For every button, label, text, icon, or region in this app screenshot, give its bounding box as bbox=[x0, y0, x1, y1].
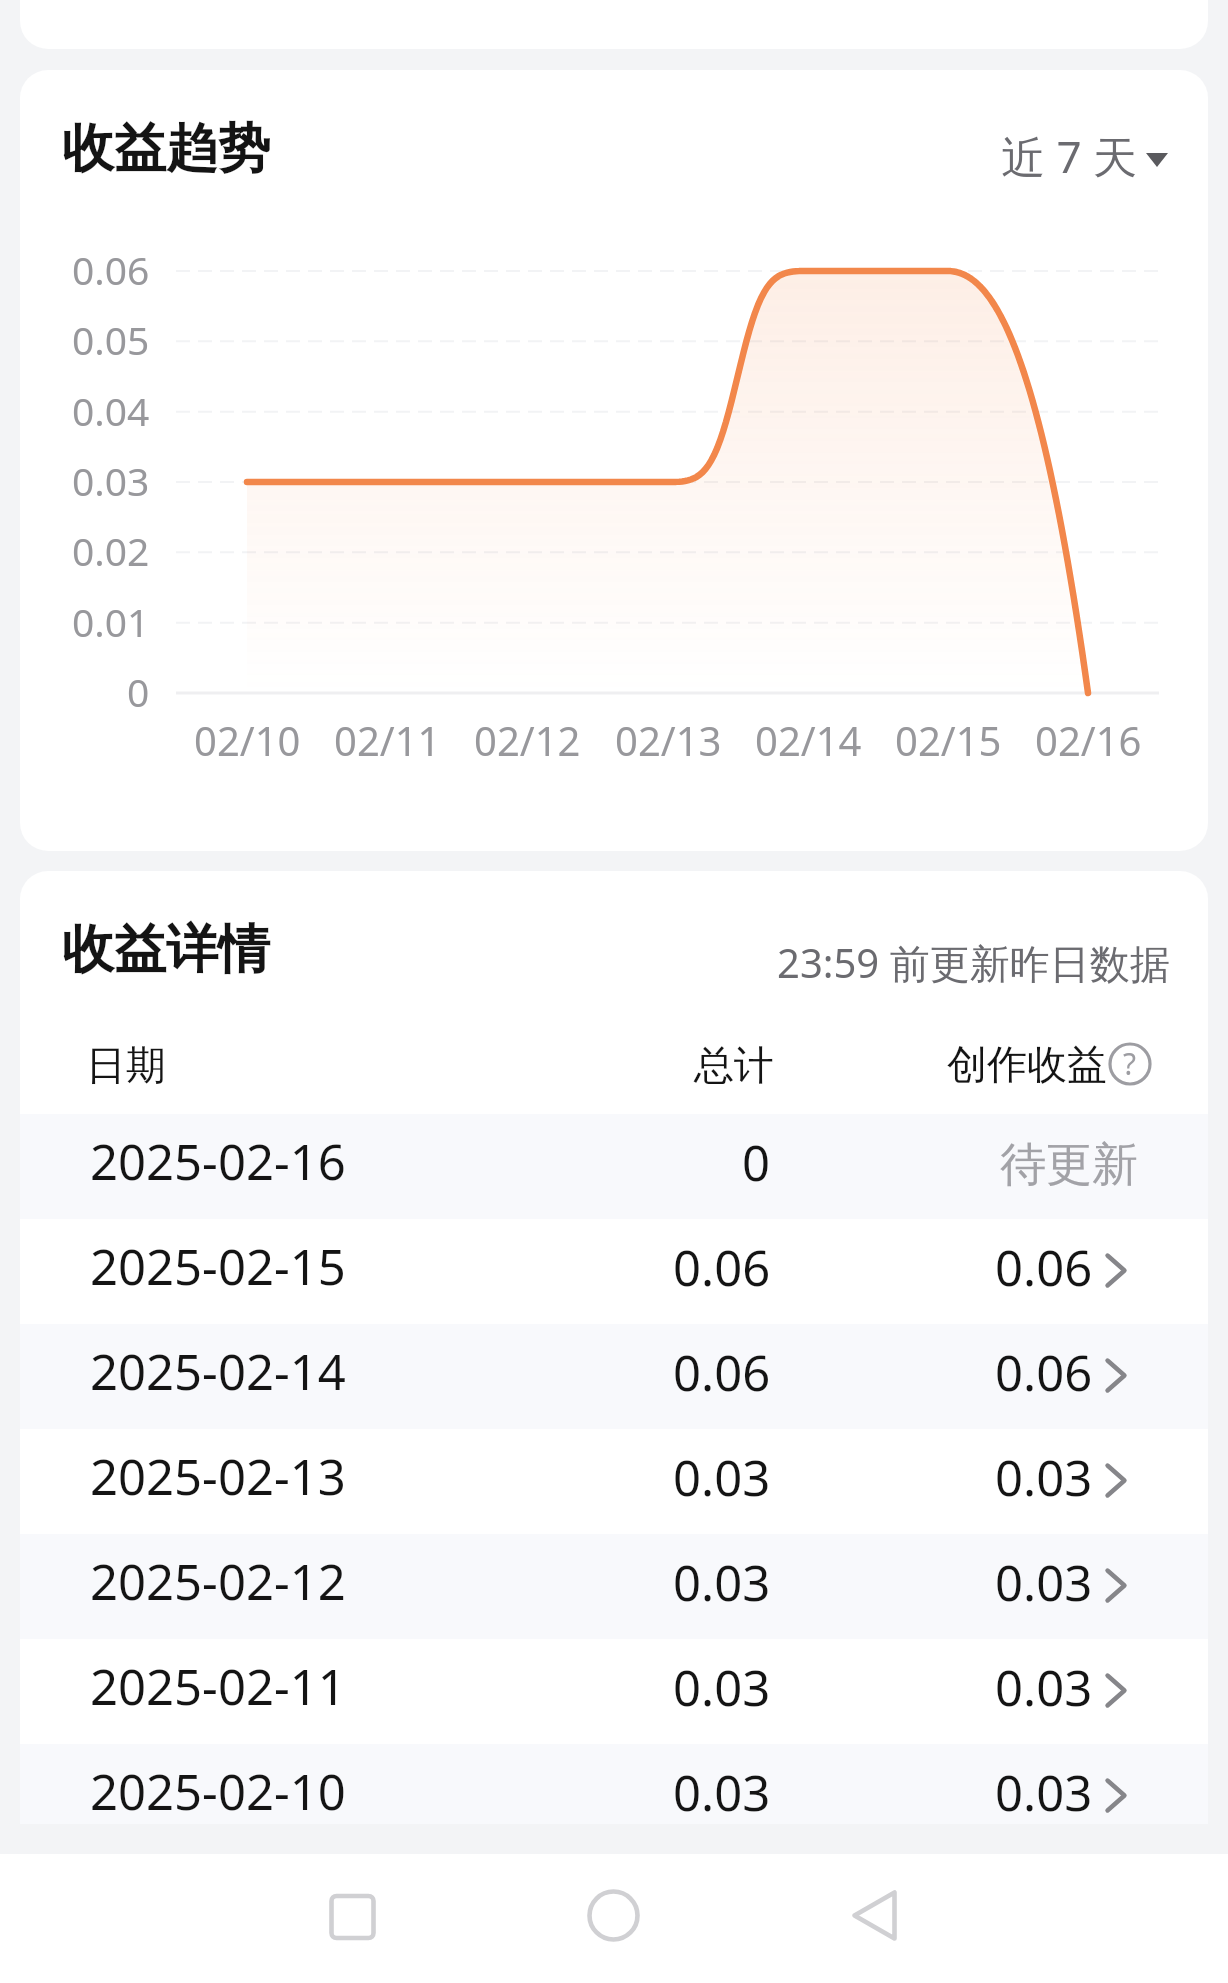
button[interactable]: 2025-02-10 bbox=[20, 1744, 1208, 1824]
staticText: 23:59 前更新昨日数据 bbox=[777, 935, 1170, 990]
staticText: 0.06 bbox=[995, 1234, 1093, 1301]
button[interactable]: Recents bbox=[294, 1854, 414, 1983]
staticText: 0.04 bbox=[72, 384, 150, 434]
staticText: 0.03 bbox=[995, 1549, 1093, 1616]
staticText: 0.05 bbox=[72, 313, 150, 363]
staticText: 2025-02-11 bbox=[90, 1653, 346, 1720]
button[interactable]: Back bbox=[814, 1854, 934, 1983]
button[interactable]: 2025-02-15 bbox=[20, 1219, 1208, 1324]
button[interactable]: 2025-02-14 bbox=[20, 1324, 1208, 1429]
staticText: ? bbox=[1123, 1043, 1137, 1084]
staticText: 2025-02-15 bbox=[90, 1233, 346, 1300]
staticText: 02/10 bbox=[194, 713, 301, 767]
staticText: 近 7 天 bbox=[1001, 126, 1138, 186]
button[interactable]: 近 7 天 bbox=[1001, 126, 1168, 186]
staticText: 2025-02-10 bbox=[90, 1758, 346, 1824]
staticText: 0 bbox=[742, 1129, 771, 1196]
staticText: 0.03 bbox=[673, 1759, 771, 1824]
staticText: 02/15 bbox=[895, 713, 1002, 767]
staticText: 0 bbox=[127, 665, 150, 715]
staticText: 0.03 bbox=[673, 1654, 771, 1721]
button[interactable]: 2025-02-13 bbox=[20, 1429, 1208, 1534]
staticText: 2025-02-14 bbox=[90, 1338, 346, 1405]
button[interactable]: 说明 bbox=[1107, 1041, 1153, 1087]
staticText: 0.06 bbox=[673, 1339, 771, 1406]
staticText: 0.03 bbox=[673, 1444, 771, 1511]
staticText: 收益趋势 bbox=[62, 116, 270, 182]
staticText: 02/12 bbox=[474, 713, 581, 767]
staticText: 待更新 bbox=[1000, 1136, 1138, 1194]
staticText: 0.06 bbox=[72, 243, 150, 293]
staticText: 02/14 bbox=[755, 713, 862, 767]
staticText: 0.06 bbox=[673, 1234, 771, 1301]
button[interactable]: Home bbox=[553, 1854, 673, 1983]
staticText: 创作收益 bbox=[947, 1039, 1107, 1089]
staticText: 0.03 bbox=[995, 1444, 1093, 1511]
staticText: 日期 bbox=[86, 1040, 166, 1090]
staticText: 02/13 bbox=[615, 713, 722, 767]
staticText: 02/16 bbox=[1035, 713, 1142, 767]
staticText: 2025-02-13 bbox=[90, 1443, 346, 1510]
staticText: 2025-02-12 bbox=[90, 1548, 346, 1615]
staticText: 0.03 bbox=[72, 454, 150, 504]
staticText: 收益详情 bbox=[62, 917, 270, 983]
staticText: 0.03 bbox=[995, 1759, 1093, 1824]
staticText: 0.06 bbox=[995, 1339, 1093, 1406]
staticText: 0.02 bbox=[72, 524, 150, 574]
button[interactable]: 2025-02-11 bbox=[20, 1639, 1208, 1744]
staticText: 0.01 bbox=[72, 595, 150, 645]
staticText: 2025-02-16 bbox=[90, 1128, 346, 1195]
button[interactable]: 2025-02-16 bbox=[20, 1114, 1208, 1219]
staticText: 02/11 bbox=[334, 713, 441, 767]
staticText: 0.03 bbox=[995, 1654, 1093, 1721]
button[interactable]: 2025-02-12 bbox=[20, 1534, 1208, 1639]
staticText: 总计 bbox=[694, 1040, 774, 1090]
staticText: 0.03 bbox=[673, 1549, 771, 1616]
